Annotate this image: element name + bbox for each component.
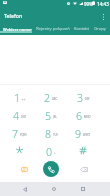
button[interactable] bbox=[3, 141, 35, 159]
staticText: 14:43 bbox=[97, 1, 109, 7]
staticText: ABC bbox=[52, 97, 58, 101]
button[interactable]: 3 bbox=[67, 89, 99, 107]
button[interactable] bbox=[67, 141, 99, 159]
staticText: 3 bbox=[77, 91, 84, 105]
staticText: Grupy bbox=[94, 26, 106, 32]
staticText: 7 bbox=[12, 127, 19, 141]
staticText: 4 bbox=[13, 109, 20, 123]
button[interactable]: 6 bbox=[67, 107, 99, 125]
staticText: 2 bbox=[44, 91, 51, 105]
button[interactable]: Call bbox=[35, 160, 67, 178]
staticText: 8 bbox=[45, 127, 52, 141]
button[interactable]: 8 bbox=[35, 125, 67, 143]
staticText: WXYZ bbox=[83, 133, 91, 137]
staticText: MNO bbox=[84, 115, 91, 119]
button[interactable]: Recents bbox=[76, 182, 90, 196]
staticText: 99% bbox=[84, 1, 93, 7]
staticText: Telefon bbox=[4, 12, 23, 19]
button[interactable]: Wybierz numer bbox=[1, 26, 34, 32]
staticText: GHI bbox=[21, 115, 26, 119]
staticText: DEF bbox=[85, 97, 90, 101]
staticText: TUV bbox=[53, 133, 58, 137]
staticText: 5 bbox=[45, 109, 52, 123]
button[interactable]: Kontakty bbox=[73, 26, 90, 32]
button[interactable]: 9 bbox=[67, 125, 99, 143]
staticText: JKL bbox=[53, 115, 57, 119]
button[interactable]: 5 bbox=[35, 107, 67, 125]
button[interactable]: 0 bbox=[35, 143, 67, 161]
staticText: Rejestry połączeń bbox=[36, 26, 70, 32]
button[interactable]: Send message bbox=[8, 161, 40, 179]
button[interactable]: Home bbox=[47, 182, 61, 196]
button[interactable]: Back bbox=[18, 182, 32, 196]
button[interactable]: 1 bbox=[3, 89, 35, 107]
button[interactable]: Backspace bbox=[68, 160, 100, 178]
staticText: + bbox=[54, 151, 56, 155]
staticText: 6 bbox=[76, 109, 83, 123]
button[interactable]: 7 bbox=[3, 125, 35, 143]
staticText: 0 bbox=[46, 145, 53, 159]
button[interactable]: More options bbox=[98, 8, 109, 25]
button[interactable]: 4 bbox=[3, 107, 35, 125]
staticText: 1 bbox=[14, 91, 21, 105]
staticText: Wybierz numer bbox=[3, 27, 32, 32]
button[interactable]: 2 bbox=[35, 89, 67, 107]
button[interactable]: Grupy bbox=[90, 26, 110, 32]
button[interactable]: Rejestry połączeń bbox=[32, 26, 73, 32]
staticText: Kontakty bbox=[73, 26, 90, 32]
staticText: 9 bbox=[75, 127, 82, 141]
staticText: PQRS bbox=[20, 133, 27, 137]
